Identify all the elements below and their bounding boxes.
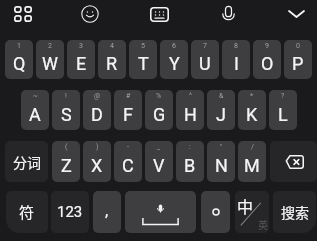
- button[interactable]: !: [52, 90, 80, 130]
- staticText: 2: [48, 42, 52, 50]
- button[interactable]: 6: [160, 40, 188, 79]
- button[interactable]: 9: [253, 40, 281, 79]
- staticText: A: [29, 104, 41, 125]
- button[interactable]: 符: [6, 191, 48, 233]
- staticText: /: [251, 143, 254, 151]
- button[interactable]: 5: [129, 40, 157, 79]
- staticText: (: [65, 143, 68, 151]
- staticText: I: [234, 53, 239, 74]
- staticText: 6: [172, 42, 176, 50]
- staticText: 搜索: [281, 202, 309, 222]
- button[interactable]: *: [238, 90, 266, 130]
- staticText: T: [138, 53, 149, 74]
- button[interactable]: 7: [191, 40, 219, 79]
- button[interactable]: Apps: [7, 0, 39, 28]
- staticText: ~: [33, 92, 38, 100]
- staticText: *: [250, 92, 254, 100]
- button[interactable]: ": [207, 141, 235, 182]
- staticText: J: [216, 104, 226, 125]
- button[interactable]: :: [176, 141, 204, 182]
- staticText: :: [189, 143, 191, 151]
- staticText: L: [278, 104, 288, 125]
- button[interactable]: (: [52, 141, 80, 182]
- button[interactable]: 1: [5, 40, 33, 79]
- button[interactable]: Emoji: [74, 0, 106, 28]
- staticText: V: [153, 155, 165, 176]
- staticText: R: [106, 53, 118, 74]
- staticText: B: [184, 155, 196, 176]
- staticText: S: [61, 104, 72, 125]
- staticText: X: [91, 155, 103, 176]
- staticText: W: [42, 53, 58, 74]
- staticText: Z: [61, 155, 72, 176]
- staticText: K: [246, 104, 258, 125]
- button[interactable]: 2: [36, 40, 64, 79]
- button[interactable]: Hide keyboard: [280, 0, 312, 28]
- button[interactable]: 搜索: [273, 191, 316, 233]
- button[interactable]: 123: [51, 191, 89, 233]
- staticText: 8: [234, 42, 238, 50]
- button[interactable]: &: [207, 90, 235, 130]
- staticText: 3: [79, 42, 83, 50]
- button[interactable]: #: [114, 90, 142, 130]
- button[interactable]: Chinese English toggle: [235, 191, 269, 233]
- staticText: ^: [189, 92, 192, 100]
- staticText: !: [65, 92, 67, 100]
- button[interactable]: ^: [176, 90, 204, 130]
- button[interactable]: Space: [125, 191, 196, 233]
- staticText: P: [292, 53, 304, 74]
- button[interactable]: 4: [98, 40, 126, 79]
- staticText: 符: [19, 201, 35, 223]
- staticText: Q: [13, 53, 26, 74]
- button[interactable]: ~: [21, 90, 49, 130]
- staticText: F: [123, 104, 133, 125]
- staticText: O: [261, 53, 274, 74]
- staticText: ): [96, 143, 99, 151]
- button[interactable]: 3: [67, 40, 95, 79]
- staticText: Y: [169, 53, 180, 74]
- button[interactable]: 8: [222, 40, 250, 79]
- button[interactable]: Period: [201, 191, 230, 233]
- button[interactable]: Voice input: [212, 0, 244, 28]
- staticText: -: [127, 143, 129, 151]
- button[interactable]: _: [145, 141, 173, 182]
- button[interactable]: ,: [93, 191, 121, 233]
- button[interactable]: ?: [269, 90, 297, 130]
- staticText: 1: [17, 42, 21, 50]
- staticText: C: [122, 155, 134, 176]
- staticText: 5: [141, 42, 145, 50]
- staticText: 4: [110, 42, 114, 50]
- button[interactable]: /: [238, 141, 266, 182]
- staticText: 9: [265, 42, 269, 50]
- staticText: _: [157, 143, 161, 151]
- staticText: D: [91, 104, 103, 125]
- staticText: E: [76, 53, 87, 74]
- staticText: @: [94, 92, 101, 100]
- staticText: M: [244, 155, 260, 176]
- staticText: %: [156, 92, 162, 100]
- button[interactable]: -: [114, 141, 142, 182]
- button[interactable]: ): [83, 141, 111, 182]
- staticText: 7: [203, 42, 207, 50]
- staticText: &: [219, 92, 224, 100]
- staticText: #: [126, 92, 131, 100]
- staticText: 0: [296, 42, 300, 50]
- staticText: G: [153, 104, 166, 125]
- button[interactable]: Keyboard layout: [143, 0, 175, 28]
- staticText: H: [184, 104, 197, 125]
- button[interactable]: 分词: [5, 141, 48, 182]
- button[interactable]: Backspace: [270, 141, 317, 182]
- staticText: 123: [57, 203, 83, 221]
- button[interactable]: %: [145, 90, 173, 130]
- button[interactable]: 0: [284, 40, 312, 79]
- staticText: ?: [281, 92, 285, 100]
- staticText: N: [215, 155, 228, 176]
- staticText: ,: [105, 201, 109, 220]
- staticText: ": [220, 143, 223, 151]
- staticText: 中: [237, 194, 254, 217]
- staticText: U: [199, 53, 211, 74]
- button[interactable]: @: [83, 90, 111, 130]
- staticText: 分词: [13, 152, 41, 172]
- staticText: 英: [258, 217, 268, 231]
